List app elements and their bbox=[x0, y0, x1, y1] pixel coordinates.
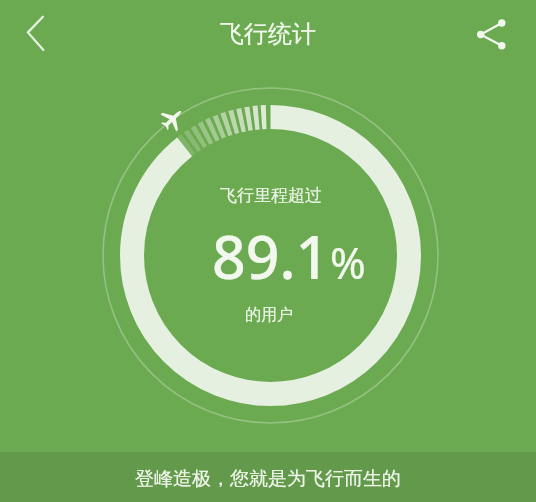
button[interactable]: Share bbox=[463, 6, 519, 62]
staticText: 飞行里程超过 bbox=[220, 185, 322, 206]
button[interactable]: Back bbox=[8, 6, 64, 62]
staticText: 的用户 bbox=[245, 305, 293, 325]
staticText: 飞行统计 bbox=[220, 19, 316, 49]
staticText: 89.1 bbox=[212, 216, 330, 296]
staticText: 登峰造极，您就是为飞行而生的 bbox=[135, 467, 401, 491]
staticText: % bbox=[330, 233, 366, 292]
